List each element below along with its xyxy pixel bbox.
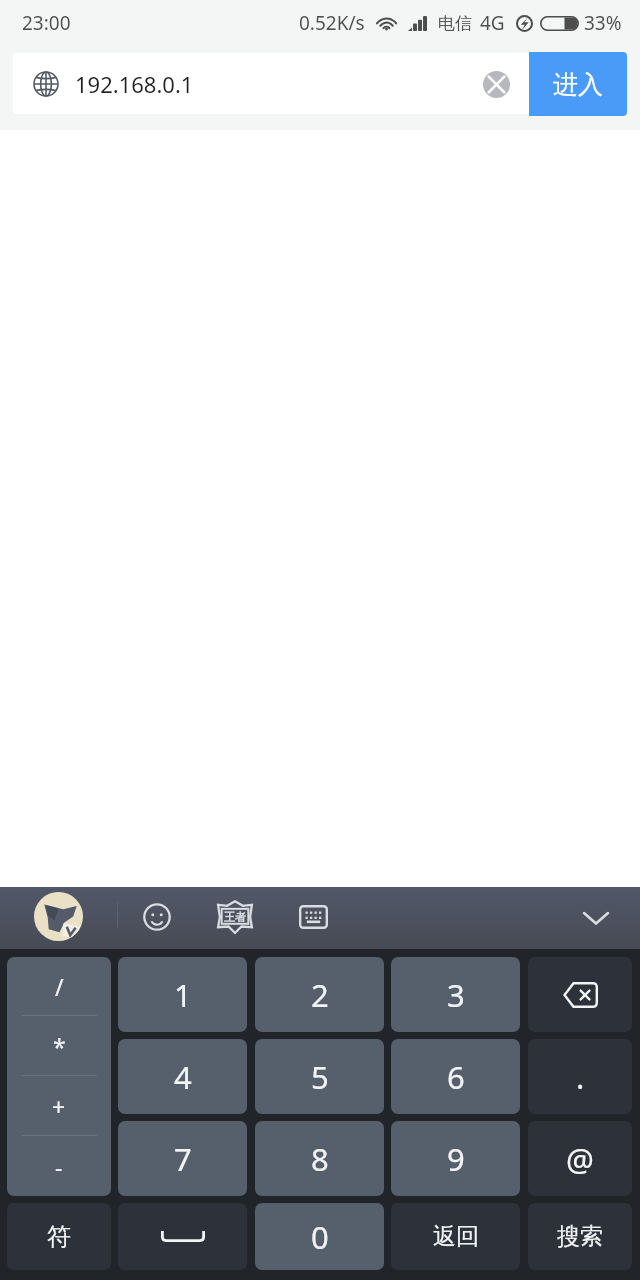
button[interactable]: * [7, 1016, 111, 1076]
button[interactable]: 192.168.0.1 [13, 53, 529, 114]
button[interactable]: 2 [255, 957, 384, 1032]
button[interactable]: 9 [391, 1121, 520, 1196]
staticText: / [55, 971, 64, 1002]
button[interactable]: + [7, 1076, 111, 1136]
button[interactable]: 返回 [391, 1203, 520, 1270]
staticText: 33% [584, 10, 622, 36]
button[interactable]: Input method logo [34, 892, 83, 941]
staticText: - [55, 1151, 63, 1182]
button[interactable]: 1 [118, 957, 247, 1032]
staticText: 192.168.0.1 [75, 69, 194, 99]
staticText: 符 [47, 1222, 71, 1252]
button[interactable]: 6 [391, 1039, 520, 1114]
staticText: 3 [447, 974, 465, 1016]
staticText: 9 [447, 1138, 465, 1180]
staticText: @ [566, 1138, 594, 1180]
staticText: 王者 [224, 910, 246, 924]
button[interactable]: 7 [118, 1121, 247, 1196]
button[interactable]: / [7, 957, 111, 1016]
button[interactable]: Hide keyboard [573, 895, 618, 940]
button[interactable]: Backspace [528, 957, 632, 1032]
staticText: * [53, 1031, 66, 1062]
staticText: 23:00 [22, 10, 71, 36]
staticText: 4 [174, 1056, 192, 1098]
button[interactable]: . [528, 1039, 632, 1114]
staticText: 返回 [433, 1222, 479, 1251]
button[interactable]: 符 [7, 1203, 111, 1270]
staticText: 4G [480, 10, 505, 36]
button[interactable]: @ [528, 1121, 632, 1196]
button[interactable]: 0 [255, 1203, 384, 1270]
other: Space [161, 1231, 205, 1242]
staticText: 1 [174, 974, 192, 1016]
staticText: 8 [311, 1138, 329, 1180]
staticText: 6 [447, 1056, 465, 1098]
button[interactable]: Game keyboard [215, 897, 255, 937]
staticText: 0.52K/s [299, 10, 365, 36]
staticText: 电信 [438, 13, 472, 34]
staticText: 0 [311, 1216, 329, 1258]
staticText: 进入 [553, 69, 603, 100]
button[interactable]: 5 [255, 1039, 384, 1114]
staticText: 7 [174, 1138, 192, 1180]
other: Backspace [563, 982, 598, 1008]
button[interactable]: Emoji [137, 897, 177, 937]
button[interactable]: Space [118, 1203, 247, 1270]
staticText: 2 [311, 974, 329, 1016]
button[interactable]: 3 [391, 957, 520, 1032]
button[interactable]: - [7, 1136, 111, 1196]
button[interactable]: 搜索 [528, 1203, 632, 1270]
staticText: . [576, 1056, 585, 1098]
staticText: 5 [311, 1056, 329, 1098]
button[interactable]: 8 [255, 1121, 384, 1196]
button[interactable]: 进入 [529, 52, 627, 116]
button[interactable]: 4 [118, 1039, 247, 1114]
button[interactable]: Switch keyboard layout [293, 897, 333, 937]
staticText: + [52, 1091, 66, 1122]
staticText: 搜索 [557, 1222, 603, 1251]
button[interactable]: Clear text [471, 59, 521, 109]
